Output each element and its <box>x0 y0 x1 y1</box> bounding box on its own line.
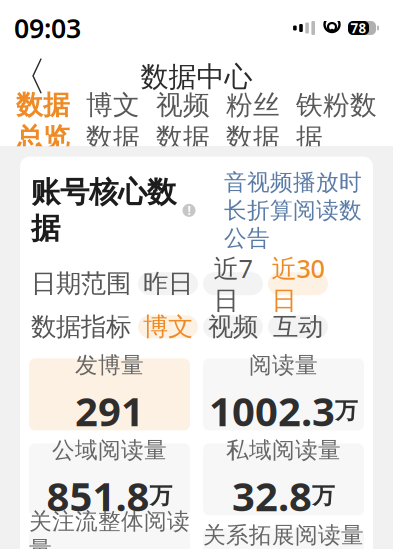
staticText: 数据中心 <box>140 60 252 94</box>
button[interactable]: 博文数据 <box>82 89 144 161</box>
button[interactable]: 互动 <box>268 315 328 338</box>
staticText: 互动 <box>273 311 323 342</box>
staticText: 私域阅读量 <box>226 436 341 464</box>
staticText: 09:03 <box>14 10 81 46</box>
button[interactable]: 近30日 <box>268 272 328 295</box>
staticText: 数据指标 <box>31 311 131 342</box>
button[interactable]: 粉丝数据 <box>222 89 284 161</box>
staticText: 万 <box>312 482 335 510</box>
staticText: 发博量 <box>75 351 144 379</box>
button[interactable]: 视频数据 <box>152 89 214 161</box>
staticText: 1002.3 <box>209 384 335 437</box>
staticText: 铁粉数据 <box>296 89 377 154</box>
staticText: 数据总览 <box>16 89 70 154</box>
button[interactable]: 铁粉数据 <box>292 89 381 161</box>
button[interactable]: 返回 <box>4 54 50 100</box>
staticText: 账号核心数据 <box>31 174 176 246</box>
staticText: 阅读量 <box>249 351 318 379</box>
staticText: 〈 <box>7 52 47 101</box>
staticText: 音视频播放时长折算阅读数公告 <box>224 169 362 252</box>
button[interactable]: 昨日 <box>138 272 198 295</box>
button[interactable]: 博文 <box>138 315 198 338</box>
staticText: 关注流整体阅读量 <box>29 507 190 549</box>
staticText: 291 <box>75 384 144 437</box>
staticText: 78 <box>350 19 366 37</box>
button[interactable]: 说明 <box>176 197 202 223</box>
staticText: 851.8 <box>46 469 149 522</box>
staticText: 博文 <box>143 311 193 342</box>
staticText: 博文数据 <box>86 89 140 154</box>
staticText: ! <box>187 202 190 218</box>
staticText: 万 <box>335 397 358 425</box>
button[interactable]: 音视频播放时长折算阅读数公告 <box>224 169 362 252</box>
staticText: 视频 <box>208 311 258 342</box>
staticText: 万 <box>149 482 172 510</box>
staticText: 公域阅读量 <box>52 436 167 464</box>
staticText: 昨日 <box>143 268 193 299</box>
button[interactable]: 数据总览 <box>12 89 74 161</box>
staticText: 关系拓展阅读量 <box>203 521 364 549</box>
staticText: 近7日 <box>213 251 252 316</box>
button[interactable]: 视频 <box>203 315 263 338</box>
staticText: 近30日 <box>271 251 324 316</box>
staticText: 日期范围 <box>31 268 131 299</box>
staticText: 粉丝数据 <box>226 89 280 154</box>
staticText: 视频数据 <box>156 89 210 154</box>
button[interactable]: 近7日 <box>203 272 263 295</box>
staticText: 32.8 <box>232 469 312 522</box>
